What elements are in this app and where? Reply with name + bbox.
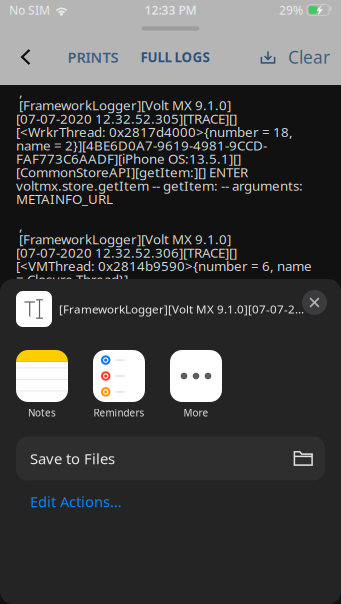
staticText: [4BE6D0A7-9619-4981-9CCD-FAF773C6AADF] xyxy=(16,284,303,302)
staticText: , xyxy=(16,217,23,235)
button[interactable]: Reminders xyxy=(80,350,157,419)
staticText: 12:33 PM xyxy=(144,2,196,18)
staticText: [FrameworkLogger][Volt MX 9.1.0] xyxy=(16,230,231,248)
button[interactable]: FULL LOGS xyxy=(120,37,212,77)
staticText: 29% xyxy=(279,2,303,18)
staticText: [<WrkrThread: 0x2817d4000>{number = 18, xyxy=(16,123,293,141)
staticText: Save to Files xyxy=(30,448,115,469)
button[interactable]: Save to Files xyxy=(16,436,325,480)
staticText: [FrameworkLogger][Volt MX 9.1.0] xyxy=(16,96,231,114)
button[interactable]: Back xyxy=(8,37,44,77)
staticText: Clear xyxy=(288,45,330,68)
staticText: , xyxy=(16,83,23,101)
staticText: Notes xyxy=(28,406,56,419)
staticText: name = 2}][4BE6D0A7-9619-4981-9CCD- xyxy=(16,136,267,154)
button[interactable]: Notes xyxy=(3,350,80,419)
staticText: No SIM xyxy=(9,2,50,18)
staticText: FAF773C6AADF][iPhone OS:13.5.1][] xyxy=(16,150,241,168)
staticText: Edit Actions… xyxy=(30,491,122,511)
staticText: [FrameworkLogger][Volt MX 9.1.0][07-07-2… xyxy=(59,301,304,317)
button[interactable]: Export logs xyxy=(251,37,285,77)
button[interactable]: PRINTS xyxy=(44,37,120,77)
staticText: [<VMThread: 0x2814b9590>{number = 6, nam… xyxy=(16,257,312,275)
staticText: [07-07-2020 12.32.52.306][TRACE][] xyxy=(16,243,237,262)
staticText: [CommonStoreAPI][getItem:][] ENTER xyxy=(16,163,248,181)
staticText: PRINTS xyxy=(67,47,118,67)
button[interactable]: Clear xyxy=(285,37,333,77)
staticText: METAINFO_URL xyxy=(16,190,113,208)
staticText: More xyxy=(183,406,208,419)
staticText: FULL LOGS xyxy=(140,48,209,66)
staticText: = Closure Thread}] xyxy=(16,270,128,288)
staticText: voltmx.store.getItem -- getItem: -- argu… xyxy=(16,176,303,195)
button[interactable]: Edit Actions… xyxy=(26,486,126,516)
button[interactable]: More xyxy=(157,350,234,419)
button[interactable]: Close xyxy=(302,290,327,315)
staticText: [07-07-2020 12.32.52.305][TRACE][] xyxy=(16,109,237,128)
staticText: Reminders xyxy=(93,406,144,419)
